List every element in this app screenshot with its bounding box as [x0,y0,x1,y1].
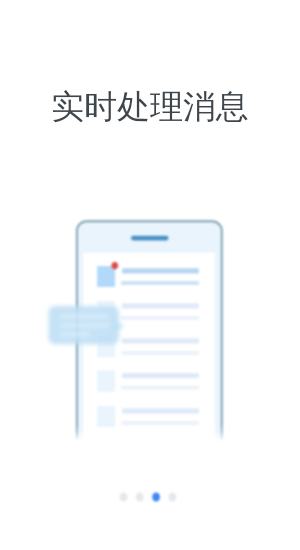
button[interactable]: Page 2 [136,492,145,501]
staticText: 实时处理消息 [51,86,249,128]
button[interactable]: Page 3 [153,492,162,501]
button[interactable]: Page 1 [119,492,128,501]
button[interactable]: Page 4 [170,492,179,501]
